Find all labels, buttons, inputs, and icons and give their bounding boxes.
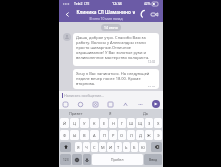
button[interactable]: Ь bbox=[123, 142, 130, 152]
button[interactable]: Voice message bbox=[122, 101, 129, 108]
staticText: С bbox=[93, 145, 96, 150]
button[interactable]: Gallery bbox=[107, 101, 114, 108]
staticText: З bbox=[148, 121, 151, 126]
staticText: Х bbox=[157, 121, 160, 126]
staticText: Ь bbox=[125, 145, 128, 150]
button[interactable]: Привет bbox=[59, 109, 93, 117]
staticText: Л bbox=[130, 133, 133, 138]
button[interactable]: Э bbox=[154, 130, 162, 140]
staticText: Э bbox=[157, 133, 160, 138]
button[interactable]: 123 bbox=[60, 154, 71, 165]
button[interactable]: Г bbox=[118, 118, 126, 128]
button[interactable]: Д bbox=[136, 130, 144, 140]
staticText: Й bbox=[63, 121, 67, 126]
button[interactable]: Н bbox=[109, 118, 117, 128]
staticText: Tele2 bbox=[74, 1, 83, 6]
button[interactable]: Да bbox=[128, 109, 163, 117]
button[interactable]: Л bbox=[127, 130, 135, 140]
button[interactable]: К bbox=[90, 118, 99, 128]
staticText: Ф bbox=[63, 133, 67, 138]
button[interactable]: Даша, доброе утро. Спасибо Вам за работу… bbox=[73, 33, 159, 66]
button[interactable]: Ввод bbox=[144, 154, 162, 165]
button[interactable]: П bbox=[100, 130, 108, 140]
button[interactable]: Shift bbox=[60, 142, 71, 152]
staticText: Клиника СЛ Шаманино ∨ bbox=[76, 9, 136, 15]
staticText: Ы bbox=[73, 133, 77, 138]
button[interactable]: М bbox=[99, 142, 106, 152]
button[interactable]: Backspace bbox=[151, 142, 162, 152]
staticText: Г bbox=[121, 121, 124, 126]
staticText: Н bbox=[112, 121, 115, 126]
button[interactable]: Х bbox=[154, 118, 162, 128]
button[interactable]: Emoji bbox=[77, 101, 84, 108]
button[interactable]: Ы bbox=[70, 130, 79, 140]
button[interactable]: Хочу к Вас записаться. На следующей неде… bbox=[73, 69, 159, 89]
button[interactable]: Б bbox=[131, 142, 138, 152]
button[interactable]: В bbox=[80, 130, 89, 140]
staticText: 12:03 bbox=[148, 86, 156, 87]
staticText: 12:02 bbox=[148, 60, 156, 64]
staticText: Е bbox=[103, 121, 106, 126]
button[interactable]: More bbox=[137, 101, 144, 108]
button[interactable]: Ю bbox=[139, 142, 146, 152]
button[interactable]: Contact avatar bbox=[63, 33, 71, 41]
staticText: Щ bbox=[138, 121, 143, 126]
staticText: М bbox=[101, 145, 105, 150]
staticText: О bbox=[120, 133, 124, 138]
staticText: В bbox=[83, 133, 86, 138]
button[interactable]: У bbox=[80, 118, 89, 128]
button[interactable]: Call bbox=[138, 9, 149, 20]
staticText: LTE bbox=[84, 2, 90, 6]
staticText: 123 bbox=[63, 158, 69, 162]
button[interactable]: Й bbox=[60, 118, 69, 128]
button[interactable]: Sticker bbox=[62, 101, 69, 108]
staticText: Б bbox=[133, 145, 136, 150]
staticText: К bbox=[93, 121, 96, 126]
staticText: П bbox=[103, 133, 106, 138]
button[interactable]: Send bbox=[152, 100, 160, 108]
staticText: Ю bbox=[141, 145, 145, 150]
staticText: Пробел bbox=[111, 157, 124, 162]
button[interactable]: З bbox=[145, 118, 153, 128]
staticText: Я bbox=[109, 111, 112, 116]
button[interactable]: Ш bbox=[127, 118, 135, 128]
button[interactable]: Back bbox=[62, 9, 73, 20]
button[interactable]: Я bbox=[75, 142, 82, 152]
button[interactable]: Т bbox=[115, 142, 122, 152]
staticText: А bbox=[93, 133, 96, 138]
button[interactable]: Написать сообщение... bbox=[62, 93, 160, 98]
staticText: В сети 10 мин назад bbox=[89, 16, 123, 21]
staticText: Р bbox=[112, 133, 115, 138]
staticText: Хочу к Вас записаться. На следующей неде… bbox=[76, 71, 156, 86]
button[interactable]: Я bbox=[93, 109, 128, 117]
button[interactable]: Щ bbox=[136, 118, 144, 128]
button[interactable]: Е bbox=[100, 118, 108, 128]
button[interactable]: Ч bbox=[83, 142, 90, 152]
button[interactable]: О bbox=[118, 130, 126, 140]
staticText: Ц bbox=[73, 121, 76, 126]
button[interactable]: Ж bbox=[145, 130, 153, 140]
button[interactable]: Ц bbox=[70, 118, 79, 128]
button[interactable]: Клиника СЛ Шаманино ∨ bbox=[73, 9, 138, 21]
staticText: Т bbox=[117, 145, 120, 150]
staticText: 12:34 bbox=[112, 1, 122, 6]
button[interactable]: Video call bbox=[149, 9, 160, 20]
staticText: 14 июня bbox=[104, 25, 118, 30]
button[interactable]: Р bbox=[109, 130, 117, 140]
staticText: Д bbox=[139, 133, 142, 138]
button[interactable]: С bbox=[91, 142, 98, 152]
staticText: Ч bbox=[85, 145, 88, 150]
staticText: Ввод bbox=[149, 157, 158, 162]
button[interactable]: Camera bbox=[92, 101, 99, 108]
button[interactable]: Dictation bbox=[83, 154, 91, 165]
button[interactable]: Ф bbox=[60, 130, 69, 140]
staticText: Привет bbox=[69, 111, 83, 116]
button[interactable]: И bbox=[107, 142, 114, 152]
button[interactable]: А bbox=[90, 130, 99, 140]
button[interactable]: Пробел bbox=[92, 154, 143, 165]
staticText: Да bbox=[143, 111, 148, 116]
button[interactable]: Switch language bbox=[72, 154, 82, 165]
staticText: Написать сообщение... bbox=[64, 93, 105, 98]
staticText: 42% bbox=[144, 2, 151, 6]
staticText: И bbox=[109, 145, 113, 150]
